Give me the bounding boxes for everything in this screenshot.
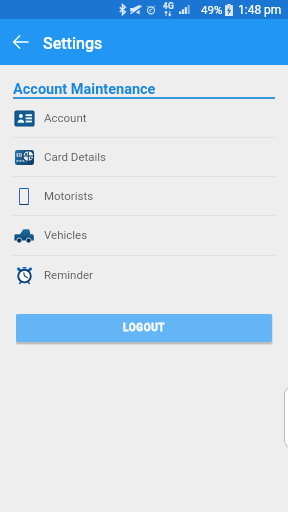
staticText: Reminder bbox=[44, 268, 93, 281]
staticText: Vehicles bbox=[44, 228, 88, 241]
staticText: Account Maintenance bbox=[13, 81, 156, 98]
button[interactable]: Back bbox=[6, 28, 34, 56]
button[interactable]: Account bbox=[0, 98, 288, 137]
button[interactable]: Reminder bbox=[0, 255, 288, 294]
staticText: LOGOUT bbox=[123, 322, 165, 334]
staticText: 49% bbox=[201, 3, 223, 16]
staticText: Account bbox=[44, 111, 87, 124]
button[interactable]: Card Details bbox=[0, 137, 288, 176]
staticText: 1:48 pm bbox=[238, 3, 282, 17]
button[interactable]: Motorists bbox=[0, 176, 288, 215]
staticText: Motorists bbox=[44, 189, 94, 202]
button[interactable]: LOGOUT bbox=[16, 314, 272, 342]
staticText: Settings bbox=[43, 34, 103, 53]
button[interactable]: Vehicles bbox=[0, 215, 288, 254]
staticText: 4G bbox=[163, 1, 174, 11]
staticText: Card Details bbox=[44, 150, 107, 163]
